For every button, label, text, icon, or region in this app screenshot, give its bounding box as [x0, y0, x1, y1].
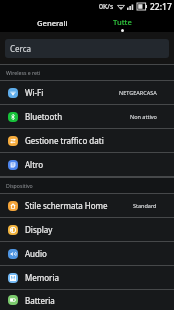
button[interactable]: Memoria	[0, 266, 174, 289]
button[interactable]: Cerca	[5, 39, 169, 58]
button[interactable]: Display	[0, 218, 174, 241]
staticText: NETGEARCASA	[119, 89, 157, 96]
staticText: 0K/s	[99, 2, 114, 12]
staticText: Bluetooth	[25, 111, 63, 122]
staticText: Audio	[25, 248, 47, 259]
staticText: Cerca	[10, 43, 32, 54]
button[interactable]: Bluetooth	[0, 105, 174, 128]
staticText: Standard	[133, 202, 157, 209]
button[interactable]: Batteria	[0, 290, 174, 310]
staticText: Tutte	[113, 17, 132, 27]
staticText: 22:17	[150, 1, 172, 13]
button[interactable]: Tutte	[87, 13, 157, 32]
button[interactable]: Wi-Fi	[0, 81, 174, 104]
button[interactable]: Generali	[17, 13, 87, 32]
staticText: Wireless e reti	[6, 69, 41, 76]
staticText: Memoria	[25, 272, 59, 283]
staticText: Dispositivo	[6, 182, 33, 189]
staticText: Generali	[37, 18, 68, 28]
staticText: Display	[25, 224, 53, 235]
staticText: Non attivo	[130, 113, 157, 120]
staticText: Gestione traffico dati	[25, 135, 104, 146]
staticText: Wi-Fi	[25, 87, 44, 98]
button[interactable]: Gestione traffico dati	[0, 129, 174, 152]
staticText: Altro	[25, 159, 44, 170]
staticText: Stile schermata Home	[25, 200, 108, 211]
button[interactable]: Audio	[0, 242, 174, 265]
button[interactable]: Stile schermata Home	[0, 194, 174, 217]
staticText: Batteria	[25, 295, 55, 306]
button[interactable]: Altro	[0, 153, 174, 176]
